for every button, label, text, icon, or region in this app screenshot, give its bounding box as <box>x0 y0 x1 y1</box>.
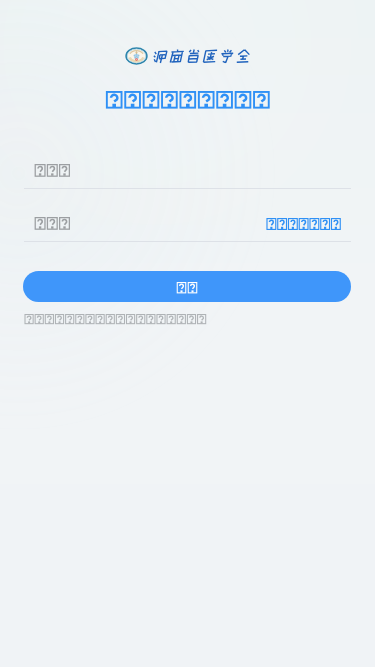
button[interactable]: 手机号 <box>24 155 351 189</box>
other: 河南省医学会 <box>151 49 252 64</box>
other: 河南省医学会会徽 <box>124 44 149 68</box>
button[interactable]: 注册登录即代表您已阅读并同意用户协议 <box>20 308 213 330</box>
button[interactable]: 验证码 <box>24 209 251 241</box>
button[interactable]: 获取短信验证码 <box>258 209 347 241</box>
button[interactable]: 登录 <box>23 271 351 302</box>
